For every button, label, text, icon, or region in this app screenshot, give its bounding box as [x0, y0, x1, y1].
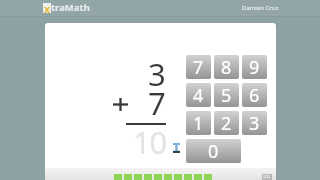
- staticText: 3: [249, 111, 260, 135]
- button[interactable]: 0: [186, 139, 241, 163]
- staticText: 0: [208, 139, 219, 163]
- button[interactable]: 2: [214, 111, 239, 135]
- staticText: 10: [133, 121, 167, 163]
- staticText: 9: [249, 55, 260, 79]
- staticText: 1: [193, 111, 204, 135]
- staticText: Damian Cruz: [242, 4, 279, 12]
- button[interactable]: 8: [214, 55, 239, 79]
- button[interactable]: 6: [242, 83, 267, 107]
- staticText: 5: [221, 83, 232, 107]
- staticText: 6: [249, 83, 260, 107]
- staticText: 2: [221, 111, 232, 135]
- staticText: 8: [221, 55, 232, 79]
- staticText: 7: [193, 55, 204, 79]
- button[interactable]: 4: [186, 83, 211, 107]
- button[interactable]: Keyboard: [262, 174, 272, 180]
- staticText: X: [44, 3, 51, 13]
- button[interactable]: 1: [186, 111, 211, 135]
- staticText: 7: [148, 82, 166, 124]
- button[interactable]: XtraMath home: [43, 1, 90, 14]
- staticText: 4: [193, 83, 204, 107]
- button[interactable]: 7: [186, 55, 211, 79]
- staticText: 3: [148, 53, 166, 95]
- button[interactable]: Damian Cruz: [242, 4, 279, 12]
- button[interactable]: 5: [214, 83, 239, 107]
- staticText: traMath: [51, 1, 90, 14]
- button[interactable]: 3: [242, 111, 267, 135]
- button[interactable]: 9: [242, 55, 267, 79]
